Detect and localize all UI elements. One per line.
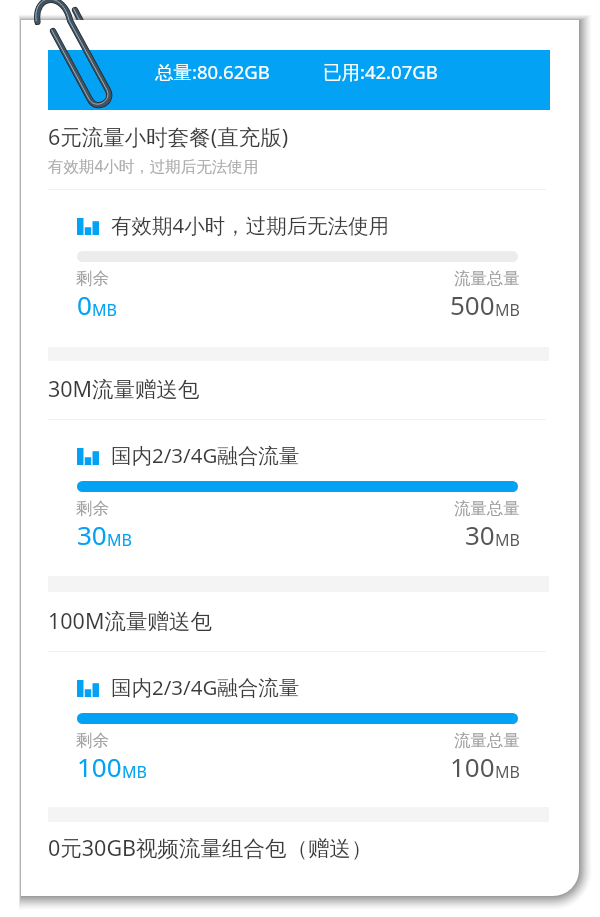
staticText: 剩余 [76,268,109,289]
staticText: MB [495,529,520,551]
staticText: 总量:80.62GB [155,59,270,84]
staticText: 30 [465,517,495,552]
staticText: 国内2/3/4G融合流量 [111,441,300,469]
staticText: 30 [77,517,107,552]
staticText: MB [495,299,520,321]
staticText: 500 [450,287,495,322]
button[interactable]: 总量:80.62GB [48,50,550,110]
button[interactable]: 100M流量赠送包 [21,20,579,896]
staticText: 0元30GB视频流量组合包（赠送） [48,833,373,862]
button[interactable]: 30M流量赠送包 [21,20,579,896]
staticText: 100 [450,749,495,784]
staticText: 6元流量小时套餐(直充版) [48,122,289,151]
staticText: 0 [77,287,92,322]
staticText: 流量总量 [454,268,520,289]
staticText: MB [107,529,132,551]
staticText: 100M流量赠送包 [48,606,212,635]
staticText: 剩余 [76,730,109,751]
staticText: 有效期4小时，过期后无法使用 [48,155,259,176]
staticText: 30M流量赠送包 [48,374,200,403]
staticText: 有效期4小时，过期后无法使用 [111,211,390,239]
button[interactable]: 6元流量小时套餐(直充版) [21,20,579,896]
staticText: 流量总量 [454,498,520,519]
staticText: 流量总量 [454,730,520,751]
staticText: 已用:42.07GB [323,59,438,84]
staticText: 剩余 [76,498,109,519]
staticText: MB [122,761,147,783]
staticText: 100 [77,749,122,784]
staticText: MB [92,299,117,321]
staticText: MB [495,761,520,783]
staticText: 国内2/3/4G融合流量 [111,673,300,701]
